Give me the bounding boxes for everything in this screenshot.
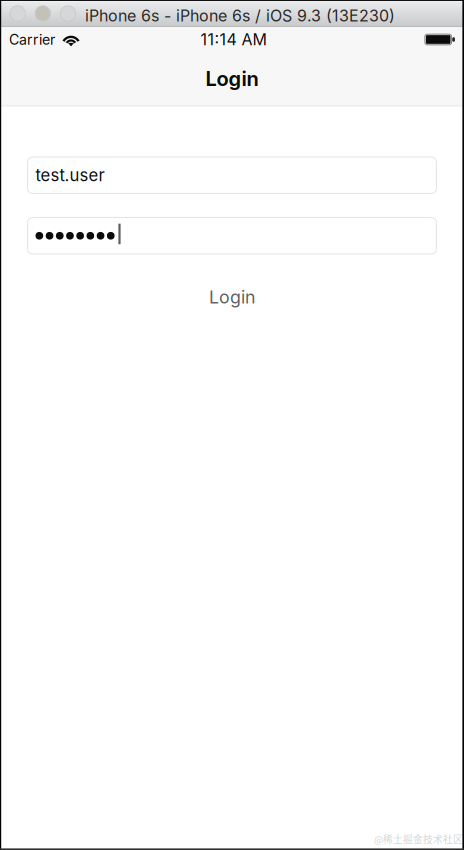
staticText: 11:14 AM (200, 30, 266, 49)
staticText: Carrier (9, 31, 55, 48)
staticText: test.user (35, 165, 104, 185)
staticText: Login (209, 286, 255, 308)
staticText: @稀土掘金技术社区 (374, 832, 463, 846)
staticText: Login (205, 67, 258, 91)
button[interactable]: Login (27, 282, 436, 312)
staticText: iPhone 6s - iPhone 6s / iOS 9.3 (13E230) (85, 6, 395, 25)
